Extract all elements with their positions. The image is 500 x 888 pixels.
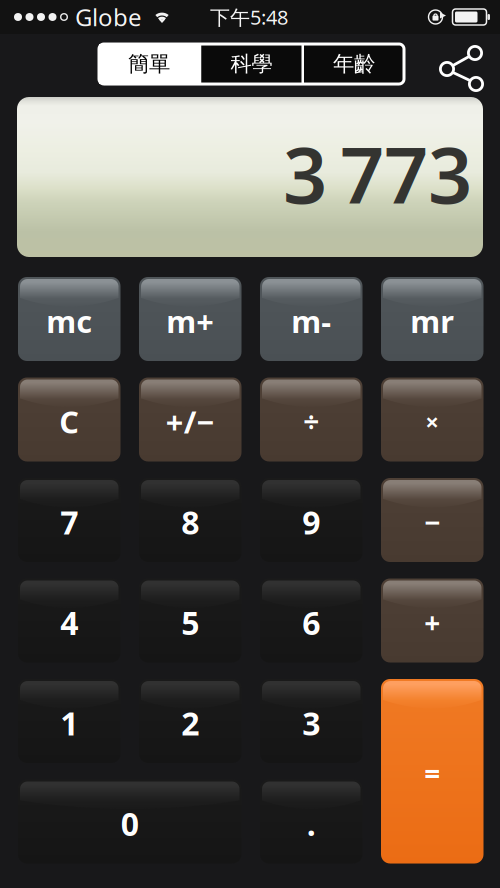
- button[interactable]: 2: [139, 679, 241, 763]
- staticText: +/−: [166, 401, 215, 442]
- staticText: 8: [181, 501, 199, 543]
- staticText: 9: [302, 501, 320, 543]
- button[interactable]: .: [260, 779, 362, 863]
- button[interactable]: 3: [260, 679, 362, 763]
- staticText: 下午5:48: [210, 4, 288, 30]
- staticText: 4: [60, 601, 78, 644]
- button[interactable]: Share: [435, 34, 491, 90]
- button[interactable]: +/−: [139, 377, 241, 461]
- staticText: m-: [291, 301, 331, 341]
- button[interactable]: mr: [381, 277, 483, 361]
- button[interactable]: −: [381, 478, 483, 562]
- button[interactable]: 9: [260, 478, 362, 562]
- staticText: mc: [46, 301, 92, 341]
- button[interactable]: 5: [139, 578, 241, 662]
- staticText: 3: [302, 702, 320, 744]
- button[interactable]: =: [381, 679, 483, 863]
- staticText: ×: [425, 406, 439, 437]
- staticText: 7: [60, 501, 78, 543]
- button[interactable]: 年齡: [304, 44, 404, 84]
- staticText: 科學: [230, 51, 272, 77]
- button[interactable]: ×: [381, 377, 483, 461]
- staticText: 5: [181, 601, 199, 644]
- button[interactable]: 1: [18, 679, 120, 763]
- staticText: m+: [166, 301, 214, 341]
- button[interactable]: m-: [260, 277, 362, 361]
- staticText: 簡單: [128, 51, 170, 77]
- staticText: 2: [181, 702, 199, 744]
- button[interactable]: 簡單: [99, 44, 199, 84]
- staticText: mr: [410, 301, 454, 341]
- staticText: 3 773: [283, 122, 472, 225]
- staticText: 年齡: [333, 51, 375, 77]
- staticText: −: [424, 503, 440, 541]
- button[interactable]: m+: [139, 277, 241, 361]
- staticText: C: [59, 401, 79, 442]
- button[interactable]: 6: [260, 578, 362, 662]
- staticText: =: [424, 755, 440, 792]
- button[interactable]: 8: [139, 478, 241, 562]
- staticText: Globe: [75, 1, 142, 33]
- button[interactable]: 4: [18, 578, 120, 662]
- staticText: ÷: [303, 403, 319, 440]
- button[interactable]: C: [18, 377, 120, 461]
- button[interactable]: ÷: [260, 377, 362, 461]
- staticText: .: [307, 802, 316, 845]
- button[interactable]: mc: [18, 277, 120, 361]
- staticText: 0: [121, 802, 139, 845]
- button[interactable]: 科學: [201, 44, 301, 84]
- button[interactable]: 0: [18, 779, 241, 863]
- staticText: +: [424, 604, 440, 641]
- button[interactable]: +: [381, 578, 483, 662]
- staticText: 6: [302, 601, 320, 644]
- staticText: 1: [60, 702, 78, 744]
- button[interactable]: 7: [18, 478, 120, 562]
